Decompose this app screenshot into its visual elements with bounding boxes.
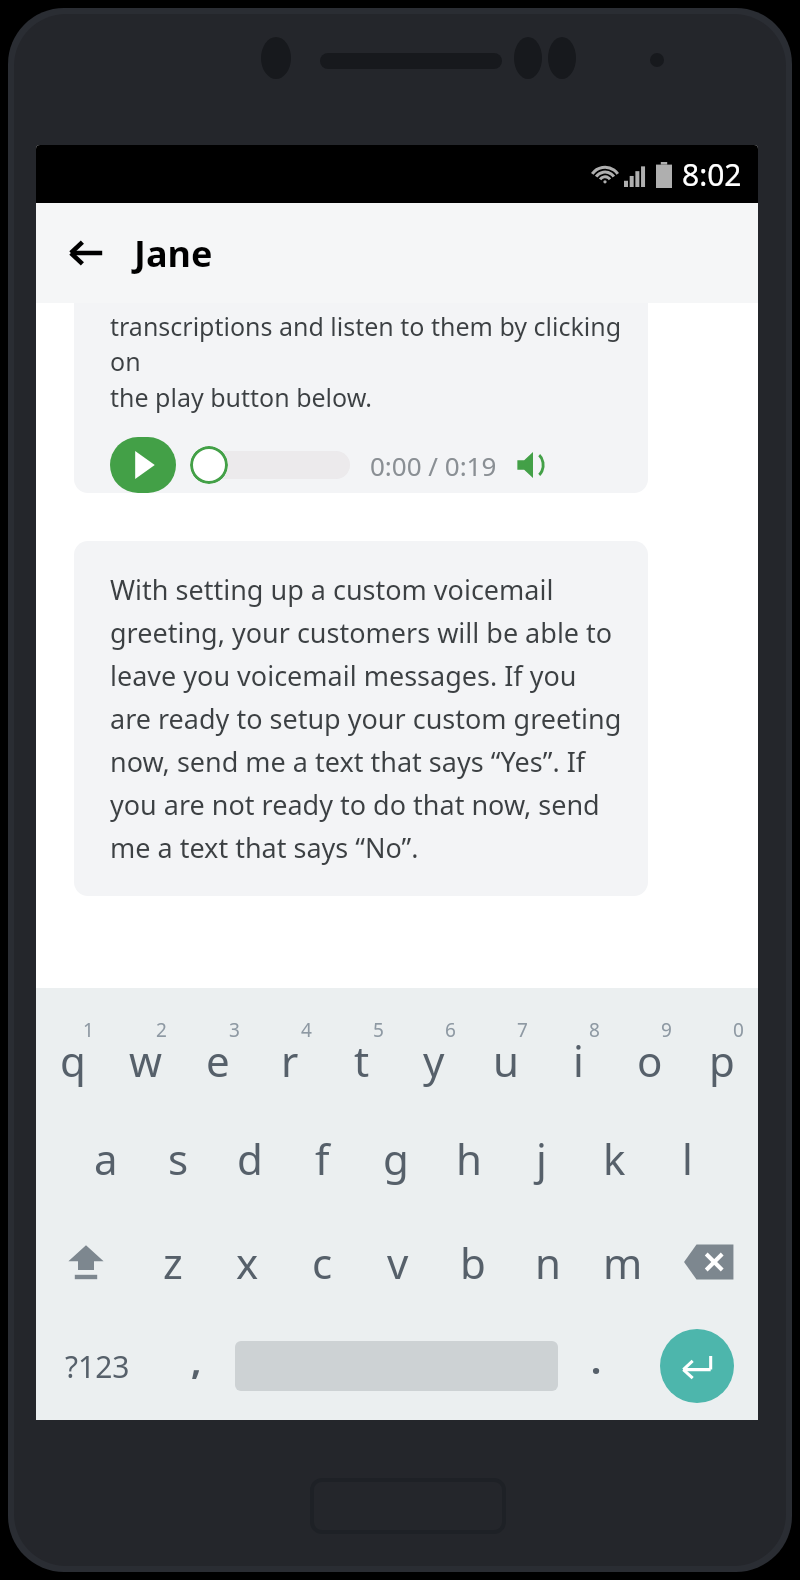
- staticText: q: [60, 1032, 86, 1089]
- button[interactable]: x: [210, 1210, 285, 1314]
- button[interactable]: v: [360, 1210, 435, 1314]
- button[interactable]: Space: [235, 1314, 558, 1418]
- staticText: Jane: [134, 229, 213, 278]
- button[interactable]: 5: [326, 1002, 398, 1106]
- staticText: l: [682, 1130, 693, 1187]
- button[interactable]: 9: [614, 1002, 686, 1106]
- staticText: 4: [301, 1017, 312, 1043]
- staticText: k: [603, 1130, 626, 1187]
- button[interactable]: m: [585, 1210, 660, 1314]
- staticText: o: [637, 1032, 663, 1089]
- staticText: ?123: [65, 1346, 130, 1387]
- staticText: 7: [517, 1017, 528, 1043]
- button[interactable]: 4: [254, 1002, 326, 1106]
- staticText: m: [603, 1234, 643, 1291]
- button[interactable]: j: [505, 1106, 578, 1210]
- button[interactable]: 6: [398, 1002, 470, 1106]
- button[interactable]: 8: [542, 1002, 614, 1106]
- button[interactable]: 0: [686, 1002, 758, 1106]
- staticText: z: [163, 1234, 183, 1291]
- staticText: j: [536, 1130, 547, 1187]
- button[interactable]: n: [510, 1210, 585, 1314]
- staticText: 8:02: [682, 154, 742, 195]
- button[interactable]: k: [578, 1106, 651, 1210]
- button[interactable]: z: [135, 1210, 210, 1314]
- button[interactable]: Shift: [36, 1210, 135, 1314]
- staticText: t: [354, 1032, 370, 1089]
- button[interactable]: s: [142, 1106, 214, 1210]
- staticText: 9: [661, 1017, 672, 1043]
- button[interactable]: d: [214, 1106, 286, 1210]
- button[interactable]: Backspace: [660, 1210, 758, 1314]
- button[interactable]: transcriptions and listen to them by cli…: [74, 303, 648, 493]
- staticText: d: [237, 1130, 263, 1187]
- staticText: 0: [733, 1017, 744, 1043]
- button[interactable]: 2: [109, 1002, 182, 1106]
- button[interactable]: .: [558, 1314, 635, 1418]
- button[interactable]: c: [285, 1210, 360, 1314]
- staticText: p: [709, 1032, 735, 1089]
- button[interactable]: [190, 445, 350, 485]
- staticText: 1: [83, 1017, 94, 1043]
- staticText: y: [423, 1032, 445, 1089]
- staticText: n: [535, 1234, 561, 1291]
- staticText: 2: [156, 1017, 167, 1043]
- staticText: .: [591, 1336, 602, 1385]
- staticText: h: [456, 1130, 482, 1187]
- button[interactable]: Enter: [635, 1314, 758, 1418]
- staticText: 6: [445, 1017, 456, 1043]
- button[interactable]: g: [359, 1106, 432, 1210]
- staticText: u: [493, 1032, 519, 1089]
- button[interactable]: f: [286, 1106, 359, 1210]
- button[interactable]: With setting up a custom voicemail greet…: [74, 541, 648, 896]
- staticText: g: [383, 1130, 409, 1187]
- button[interactable]: Back: [58, 225, 114, 281]
- button[interactable]: l: [651, 1106, 724, 1210]
- staticText: r: [281, 1032, 299, 1089]
- button[interactable]: 7: [470, 1002, 542, 1106]
- button[interactable]: Play: [110, 437, 176, 493]
- staticText: c: [312, 1234, 333, 1291]
- staticText: 8: [589, 1017, 600, 1043]
- staticText: 5: [373, 1017, 384, 1043]
- staticText: w: [129, 1032, 163, 1089]
- staticText: e: [206, 1032, 230, 1089]
- staticText: v: [387, 1234, 409, 1291]
- button[interactable]: b: [435, 1210, 510, 1314]
- button[interactable]: a: [70, 1106, 142, 1210]
- staticText: 0:00 / 0:19: [370, 448, 497, 483]
- button[interactable]: 1: [36, 1002, 109, 1106]
- staticText: 3: [229, 1017, 240, 1043]
- staticText: a: [94, 1130, 118, 1187]
- staticText: b: [460, 1234, 486, 1291]
- button[interactable]: ?123: [36, 1314, 158, 1418]
- staticText: x: [236, 1234, 259, 1291]
- button[interactable]: 3: [182, 1002, 254, 1106]
- button[interactable]: h: [432, 1106, 505, 1210]
- button[interactable]: Volume: [511, 443, 555, 487]
- staticText: s: [168, 1130, 189, 1187]
- staticText: i: [573, 1032, 584, 1089]
- staticText: f: [315, 1130, 330, 1187]
- staticText: transcriptions and listen to them by cli…: [110, 309, 622, 415]
- staticText: ,: [191, 1336, 202, 1385]
- staticText: With setting up a custom voicemail greet…: [110, 571, 624, 866]
- button[interactable]: ,: [158, 1314, 235, 1418]
